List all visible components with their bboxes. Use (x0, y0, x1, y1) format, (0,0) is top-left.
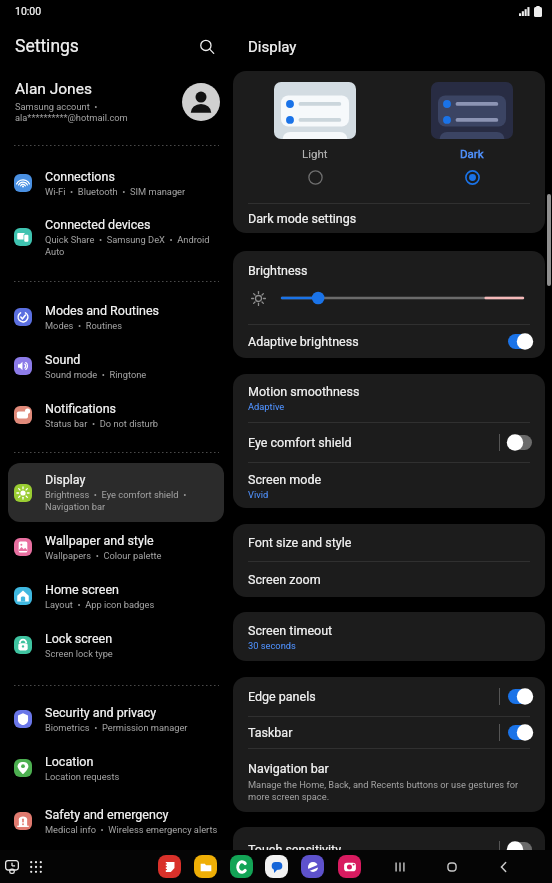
other: Toggle (508, 724, 532, 741)
staticText: Connections (45, 169, 115, 184)
staticText: Display (45, 472, 86, 487)
staticText: Screen lock type (45, 648, 113, 659)
staticText: Light (302, 147, 328, 160)
button[interactable]: Home (440, 855, 464, 879)
staticText: Security and privacy (45, 705, 157, 720)
button[interactable]: Sound (0, 347, 233, 384)
staticText: Vivid (248, 489, 269, 500)
staticText: Edge panels (248, 689, 499, 704)
staticText: Modes • Routines (45, 320, 123, 331)
button[interactable]: Back (492, 855, 516, 879)
staticText: Brightness (248, 263, 308, 278)
staticText: 30 seconds (248, 640, 296, 651)
button[interactable]: folder (194, 855, 217, 878)
button[interactable]: Motion smoothness (233, 374, 545, 422)
staticText: Samsung account • (15, 101, 98, 112)
button[interactable]: phone (230, 855, 253, 878)
button[interactable]: Recent apps (2, 857, 22, 877)
button[interactable]: Connections (0, 164, 233, 201)
button[interactable]: Touch sensitivity (233, 827, 545, 872)
staticText: 10:00 (15, 5, 42, 17)
button[interactable]: Wallpaper and style (0, 528, 233, 565)
staticText: Wi-Fi • Bluetooth • SIM manager (45, 186, 186, 197)
button[interactable]: Search (194, 34, 220, 60)
staticText: Manage the Home, Back, and Recents butto… (248, 779, 533, 802)
other: Toggle (508, 333, 532, 350)
button[interactable]: Modes and Routines (0, 298, 233, 335)
button[interactable]: Dark mode settings (233, 204, 545, 233)
staticText: Wallpapers • Colour palette (45, 550, 162, 561)
staticText: Medical info • Wireless emergency alerts (45, 824, 218, 835)
button[interactable]: camera (338, 855, 361, 878)
staticText: ala**********@hotmail.com (15, 112, 128, 123)
staticText: Screen timeout (248, 623, 333, 638)
staticText: Adaptive brightness (248, 334, 508, 349)
staticText: Notifications (45, 401, 117, 416)
staticText: Safety and emergency (45, 807, 169, 822)
button[interactable]: Apps (26, 857, 46, 877)
button[interactable]: Home screen (0, 577, 233, 614)
other: Toggle (508, 688, 532, 705)
staticText: Lock screen (45, 631, 113, 646)
staticText: Alan Jones (15, 80, 92, 98)
staticText: Status bar • Do not disturb (45, 418, 159, 429)
staticText: Layout • App icon badges (45, 599, 155, 610)
button[interactable]: Eye comfort shield (233, 423, 545, 462)
button[interactable]: Dark (431, 82, 513, 185)
staticText: Settings (15, 36, 79, 57)
staticText: Adaptive (248, 401, 285, 412)
button[interactable]: internet (301, 855, 324, 878)
button[interactable]: Alan Jones (0, 71, 233, 145)
button[interactable]: Light (274, 82, 356, 185)
staticText: Connected devices (45, 217, 151, 232)
button[interactable]: Adaptive brightness (233, 325, 545, 358)
staticText: Eye comfort shield (248, 435, 499, 450)
button[interactable]: note (158, 855, 181, 878)
button[interactable]: Font size and style (233, 524, 545, 561)
other: Toggle (508, 841, 532, 858)
button[interactable]: Notifications (0, 396, 233, 433)
button[interactable]: Screen mode (233, 463, 545, 508)
staticText: Location requests (45, 771, 120, 782)
staticText: Dark mode settings (248, 211, 357, 226)
button[interactable]: Display (8, 463, 224, 522)
staticText: Taskbar (248, 725, 499, 740)
button[interactable]: Taskbar (233, 717, 545, 748)
staticText: Dark (460, 147, 484, 160)
button[interactable]: Recents (388, 855, 412, 879)
staticText: Motion smoothness (248, 384, 360, 399)
staticText: Sound (45, 352, 81, 367)
staticText: Quick Share • Samsung DeX • Android Auto (45, 234, 223, 258)
other: Toggle (508, 434, 532, 451)
staticText: Touch sensitivity (248, 842, 499, 857)
staticText: Brightness • Eye comfort shield • Naviga… (45, 489, 214, 513)
staticText: Biometrics • Permission manager (45, 722, 188, 733)
staticText: Screen zoom (248, 572, 321, 587)
staticText: Screen mode (248, 472, 322, 487)
staticText: Display (248, 38, 297, 56)
staticText: Wallpaper and style (45, 533, 154, 548)
button[interactable]: Safety and emergency (0, 797, 233, 845)
staticText: Modes and Routines (45, 303, 159, 318)
button[interactable]: Screen timeout (233, 612, 545, 661)
staticText: Sound mode • Ringtone (45, 369, 147, 380)
button[interactable]: message (265, 855, 288, 878)
button[interactable]: Connected devices (0, 213, 233, 261)
button[interactable]: Navigation bar (233, 749, 545, 812)
staticText: Font size and style (248, 535, 352, 550)
staticText: Location (45, 754, 94, 769)
staticText: Navigation bar (248, 761, 329, 776)
button[interactable]: Screen zoom (233, 562, 545, 597)
button[interactable]: Lock screen (0, 626, 233, 663)
button[interactable]: Security and privacy (0, 700, 233, 737)
button[interactable]: Edge panels (233, 677, 545, 716)
staticText: Home screen (45, 582, 120, 597)
button[interactable]: Location (0, 749, 233, 786)
